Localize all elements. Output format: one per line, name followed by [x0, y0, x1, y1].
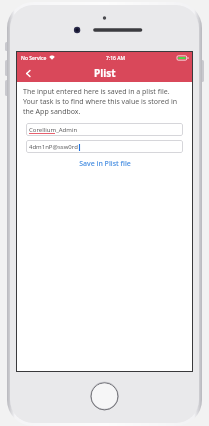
staticText: The input entered here is saved in a pli… [23, 87, 186, 117]
staticText: 7:16 AM [106, 55, 126, 62]
staticText: 4dm1nP@ssw0rd [29, 143, 78, 151]
staticText: Plist [94, 66, 116, 80]
button[interactable]: 4dm1nP@ssw0rd [26, 140, 183, 153]
staticText: Corellium_Admin [29, 126, 78, 134]
staticText: No Service [21, 55, 47, 62]
button[interactable]: Corellium_Admin [26, 123, 183, 136]
button[interactable]: Save in Plist file [23, 159, 186, 169]
button[interactable]: Back [17, 64, 39, 82]
staticText: Save in Plist file [79, 159, 131, 169]
